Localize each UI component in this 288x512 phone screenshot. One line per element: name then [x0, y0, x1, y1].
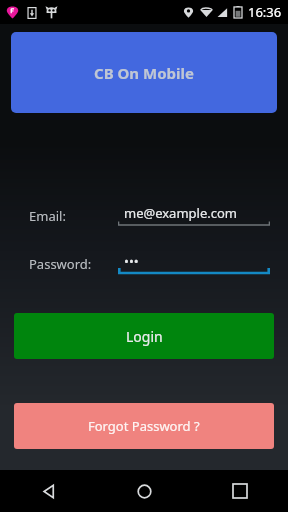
- button[interactable]: CB On Mobile: [11, 32, 277, 113]
- button[interactable]: Back: [0, 470, 96, 512]
- button[interactable]: Home: [96, 470, 192, 512]
- staticText: Login: [126, 327, 163, 346]
- staticText: •••: [124, 252, 139, 270]
- button[interactable]: Recent apps: [192, 470, 288, 512]
- staticText: Password:: [29, 255, 92, 273]
- button[interactable]: Login: [14, 313, 274, 359]
- button[interactable]: •••: [118, 248, 270, 282]
- button[interactable]: me@example.com: [118, 200, 270, 234]
- staticText: me@example.com: [124, 204, 237, 222]
- button[interactable]: Forgot Password ?: [14, 403, 274, 449]
- staticText: Forgot Password ?: [88, 417, 200, 435]
- staticText: Email:: [29, 207, 66, 225]
- staticText: 16:36: [248, 3, 282, 21]
- staticText: CB On Mobile: [94, 63, 194, 83]
